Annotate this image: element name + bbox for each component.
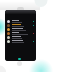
button[interactable] <box>5 35 36 39</box>
button[interactable]: Compose <box>18 58 21 60</box>
button[interactable] <box>5 23 36 27</box>
button[interactable]: Menu <box>5 10 36 14</box>
button[interactable] <box>5 19 36 23</box>
button[interactable] <box>5 39 36 43</box>
button[interactable] <box>5 27 36 31</box>
button[interactable] <box>5 31 36 35</box>
